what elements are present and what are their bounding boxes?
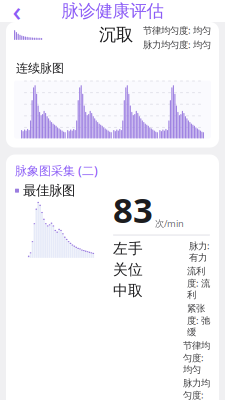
staticText: 节律均匀度: 均匀 [183, 340, 210, 375]
staticText: 次/min [155, 217, 184, 229]
staticText: 脉力均匀度: 均匀 [143, 38, 211, 51]
staticText: 脉诊健康评估 [61, 0, 163, 22]
staticText: 沉取 [99, 24, 133, 45]
staticText: 中取 [113, 281, 143, 299]
staticText: 节律均匀度: 均匀 [143, 24, 211, 36]
staticText: 脉力均匀度: 均匀 [183, 377, 210, 400]
staticText: 连续脉图 [16, 61, 64, 75]
staticText: 脉象图采集 (二) [15, 162, 98, 178]
staticText: 关位 [113, 260, 143, 278]
staticText: 83 [113, 186, 153, 232]
staticText: 最佳脉图 [23, 182, 75, 199]
staticText: 左手 [113, 239, 143, 257]
staticText: ‹ [12, 0, 21, 29]
staticText: 脉力: 有力 [189, 239, 210, 263]
staticText: 紧张度: 弛缓 [187, 303, 210, 338]
button[interactable]: Back [0, 0, 34, 22]
staticText: 流利度: 流利 [187, 265, 210, 301]
